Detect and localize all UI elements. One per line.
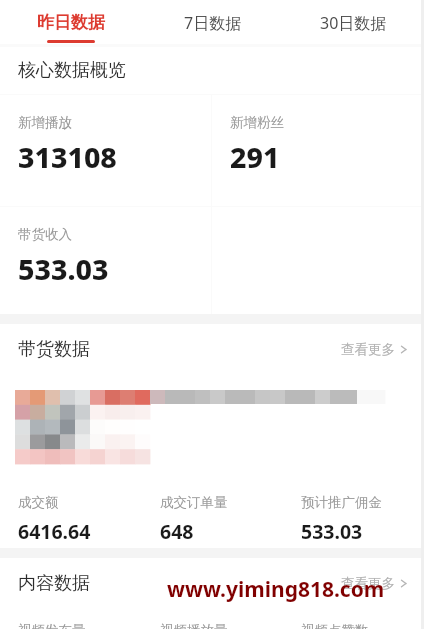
staticText: 视频播放量 [160,622,228,629]
staticText: 成交额 [18,494,59,511]
staticText: 30日数据 [320,12,387,34]
button[interactable]: 查看更多 [341,575,409,592]
staticText: 新增粉丝 [230,114,284,131]
staticText: 预计推广佣金 [301,494,382,511]
button[interactable]: 昨日数据 [0,0,142,44]
staticText: 6416.64 [18,518,91,545]
staticText: 7日数据 [184,12,242,34]
button[interactable] [0,375,424,481]
staticText: 313108 [18,138,117,177]
button[interactable]: 7日数据 [142,0,283,44]
staticText: 昨日数据 [37,12,105,33]
staticText: 648 [160,518,194,545]
staticText: 带货收入 [18,226,72,243]
staticText: 带货数据 [18,338,90,361]
staticText: 视频发布量 [18,622,86,629]
staticText: 成交订单量 [160,494,228,511]
button[interactable]: 查看更多 [341,341,409,358]
staticText: www.yiming818.com [167,575,385,604]
button[interactable]: 30日数据 [283,0,424,44]
staticText: 291 [230,138,280,177]
staticText: 内容数据 [18,572,90,595]
staticText: 查看更多 [341,575,395,592]
staticText: 533.03 [18,250,109,289]
staticText: 533.03 [301,518,363,545]
staticText: 新增播放 [18,114,72,131]
staticText: 视频点赞数 [301,622,369,629]
staticText: 核心数据概览 [18,59,126,82]
staticText: 查看更多 [341,341,395,358]
